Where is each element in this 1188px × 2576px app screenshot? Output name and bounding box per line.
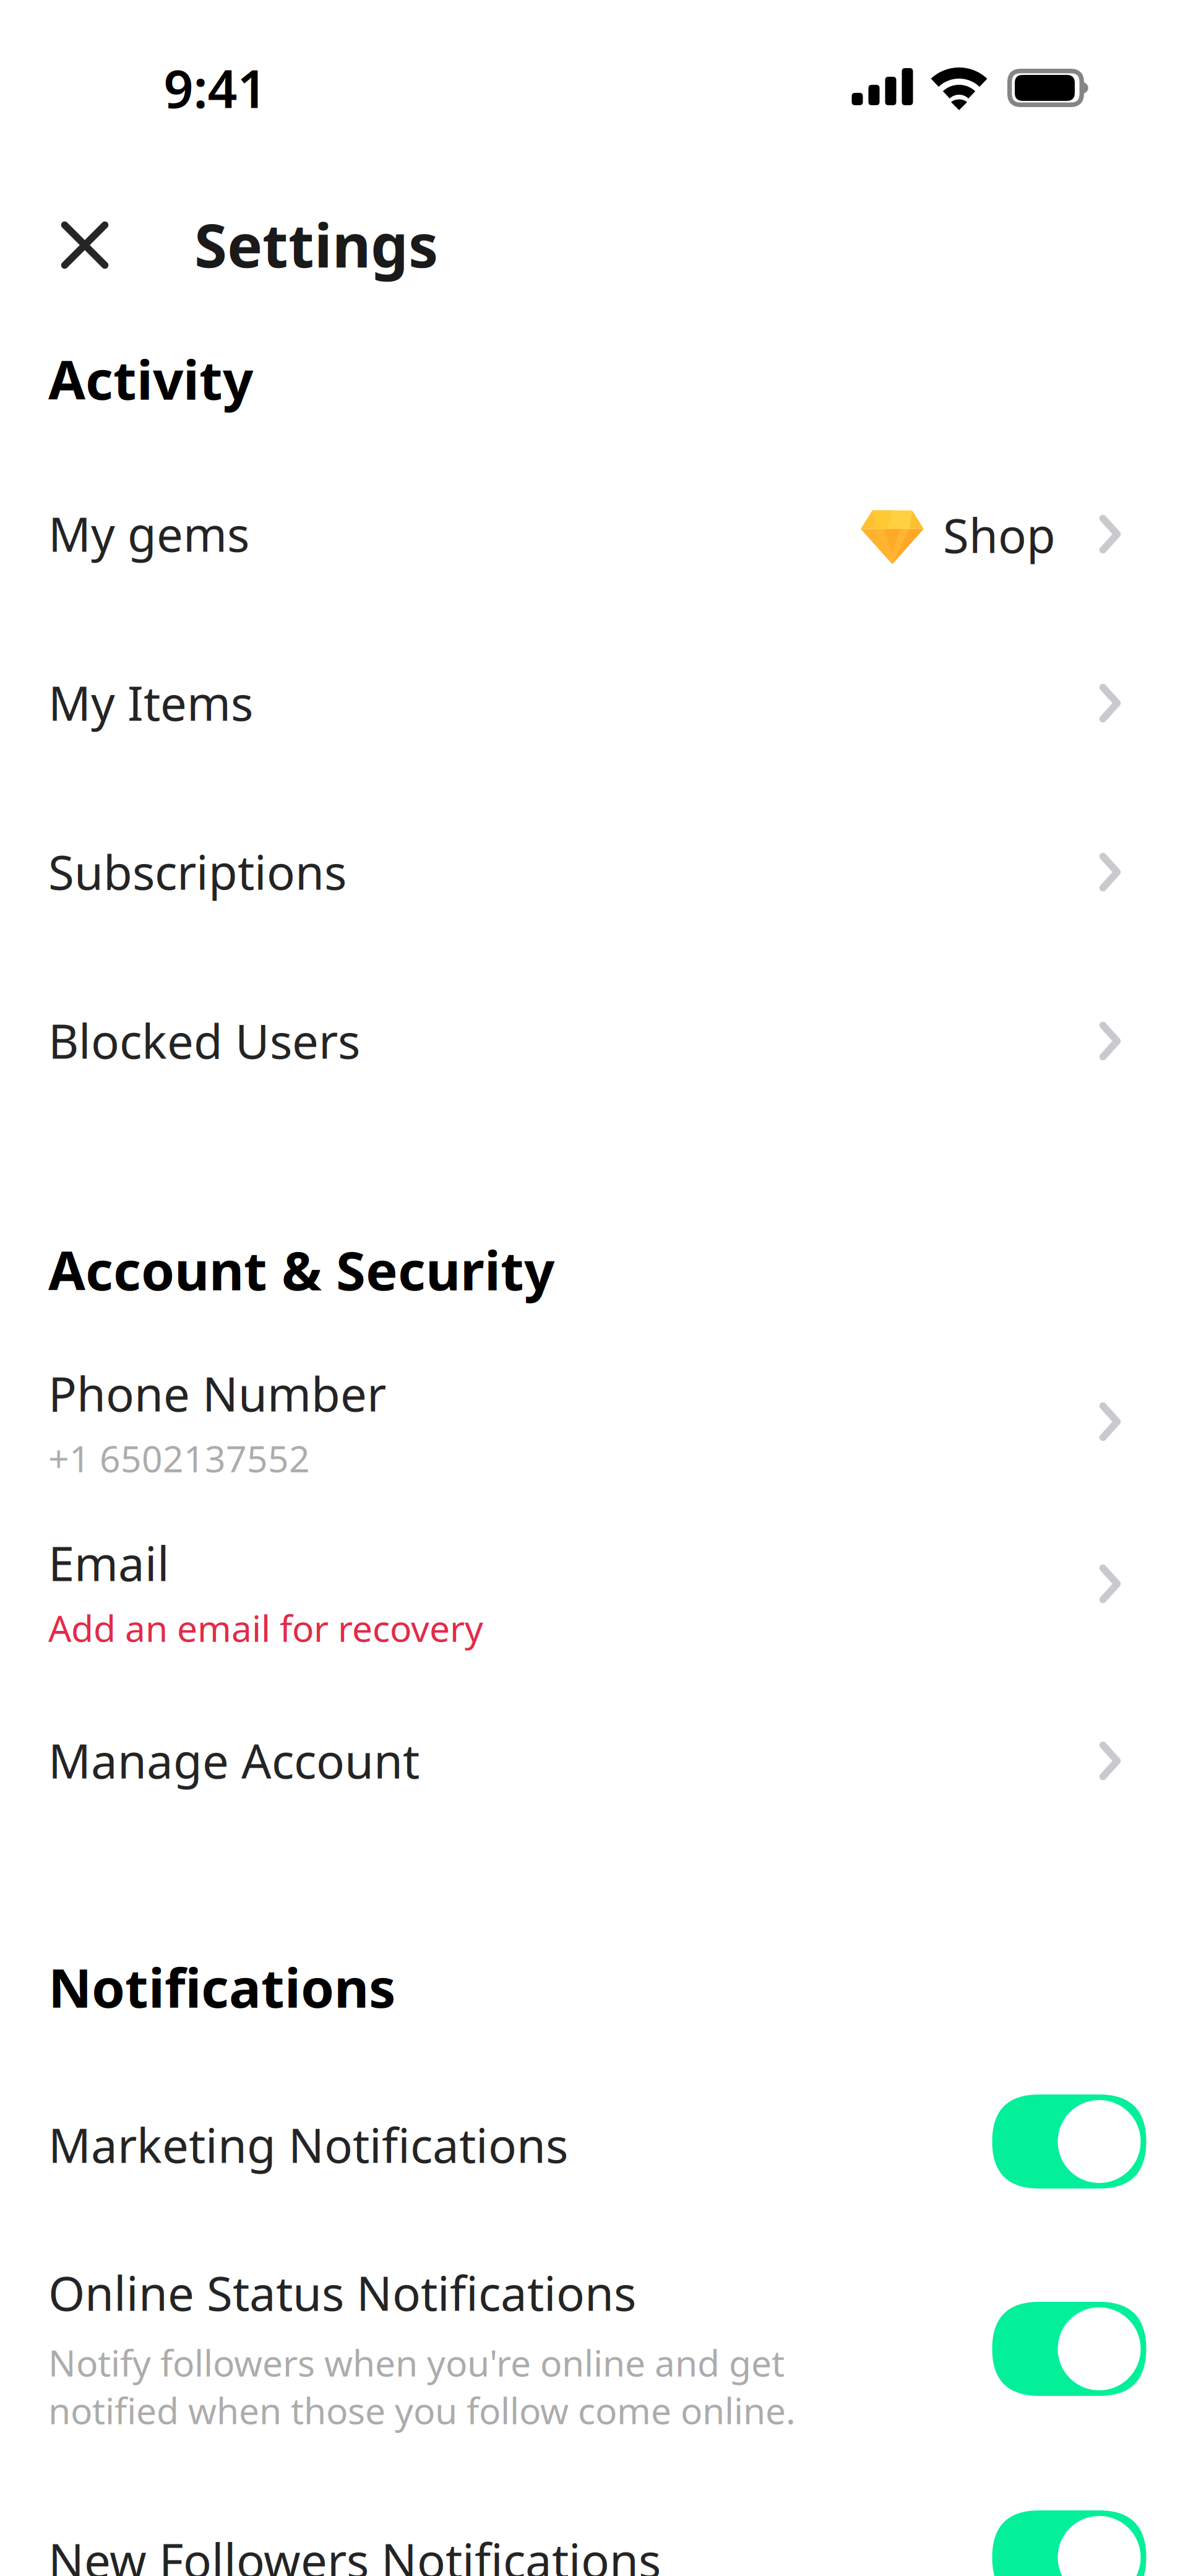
- staticText: Online Status Notifications: [48, 2261, 636, 2324]
- button[interactable]: Phone Number, +1 6502137552: [0, 1340, 1188, 1495]
- staticText: Manage Account: [48, 1729, 420, 1791]
- staticText: Email: [48, 1532, 170, 1594]
- staticText: Shop: [943, 504, 1056, 566]
- staticText: Blocked Users: [48, 1009, 360, 1072]
- staticText: +1 6502137552: [48, 1434, 310, 1482]
- staticText: Add an email for recovery: [48, 1604, 483, 1652]
- button[interactable]: Email, Add an email for recovery: [0, 1509, 1188, 1664]
- button[interactable]: Subscriptions: [0, 810, 1188, 934]
- staticText: Subscriptions: [48, 840, 346, 903]
- staticText: Activity: [48, 343, 253, 414]
- button[interactable]: New Followers Notifications: [980, 2498, 1159, 2576]
- button[interactable]: Blocked Users: [0, 979, 1188, 1103]
- staticText: Account & Security: [48, 1234, 554, 1305]
- button[interactable]: New Followers Notifications: [0, 2496, 1188, 2576]
- button[interactable]: Online Status Notifications: [980, 2289, 1159, 2408]
- staticText: Marketing Notifications: [48, 2113, 568, 2176]
- button[interactable]: Marketing Notifications: [980, 2082, 1159, 2201]
- staticText: notified when those you follow come onli…: [48, 2386, 796, 2434]
- button[interactable]: Close: [30, 191, 139, 300]
- button[interactable]: Online Status Notifications: [0, 2247, 1188, 2451]
- staticText: Phone Number: [48, 1362, 386, 1424]
- button[interactable]: My Items: [0, 641, 1188, 765]
- staticText: Notify followers when you're online and …: [48, 2338, 785, 2387]
- staticText: My Items: [48, 671, 253, 734]
- staticText: My gems: [48, 502, 249, 565]
- button[interactable]: Marketing Notifications: [0, 2074, 1188, 2210]
- button[interactable]: Manage Account: [0, 1699, 1188, 1823]
- staticText: Notifications: [48, 1951, 396, 2022]
- staticText: New Followers Notifications: [48, 2529, 661, 2576]
- staticText: 9:41: [164, 53, 267, 122]
- button[interactable]: My gems, Shop: [0, 472, 1188, 596]
- staticText: Settings: [194, 205, 438, 284]
